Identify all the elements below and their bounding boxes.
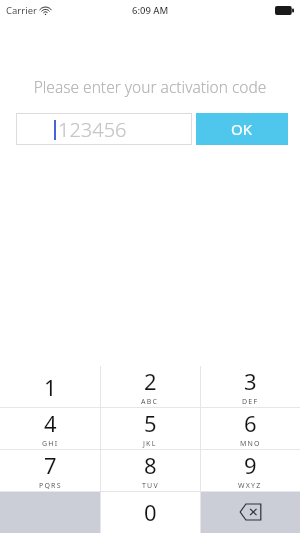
staticText: 6:09 AM [132, 4, 169, 17]
staticText: 9 [244, 450, 257, 480]
staticText: 4 [44, 408, 57, 438]
staticText: Carrier [6, 4, 37, 17]
staticText: 8 [144, 450, 157, 480]
button[interactable]: Delete [200, 491, 300, 533]
staticText: WXYZ [238, 481, 262, 491]
button[interactable]: Blank [0, 491, 100, 533]
button[interactable]: 9 [200, 449, 300, 491]
button[interactable]: 5 [100, 407, 200, 449]
button[interactable]: 6 [200, 407, 300, 449]
staticText: 5 [144, 408, 157, 438]
staticText: 7 [44, 450, 57, 480]
button[interactable]: 123456 [16, 113, 192, 145]
staticText: DEF [242, 397, 259, 407]
staticText: 2 [144, 366, 157, 396]
staticText: 6 [244, 408, 257, 438]
staticText: GHI [42, 439, 59, 449]
staticText: Please enter your activation code [12, 76, 288, 97]
staticText: MNO [240, 439, 261, 449]
staticText: OK [231, 119, 253, 139]
button[interactable]: 1 [0, 366, 100, 407]
button[interactable]: 0 [100, 491, 200, 533]
button[interactable]: OK [196, 113, 288, 145]
staticText: 0 [144, 497, 157, 527]
staticText: JKL [143, 439, 157, 449]
button[interactable]: 2 [100, 366, 200, 407]
button[interactable]: 4 [0, 407, 100, 449]
button[interactable]: 8 [100, 449, 200, 491]
staticText: PQRS [39, 481, 62, 491]
staticText: 123456 [58, 116, 127, 143]
staticText: 3 [244, 366, 257, 396]
staticText: TUV [142, 481, 159, 491]
staticText: 1 [44, 372, 57, 402]
button[interactable]: 7 [0, 449, 100, 491]
button[interactable]: 3 [200, 366, 300, 407]
staticText: ABC [141, 397, 159, 407]
